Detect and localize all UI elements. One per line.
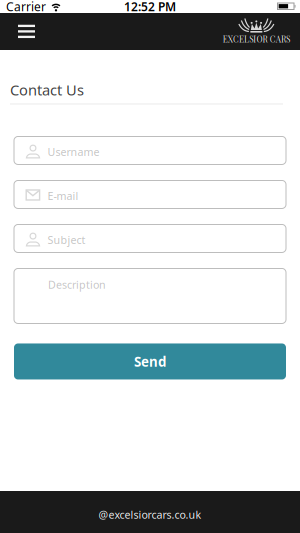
button[interactable]: Send bbox=[14, 339, 286, 379]
staticText: E-mail bbox=[47, 189, 78, 203]
staticText: Send bbox=[134, 353, 166, 370]
button[interactable]: @excelsiorcars.co.uk bbox=[98, 502, 201, 522]
staticText: Username bbox=[47, 145, 99, 159]
button[interactable]: Description bbox=[14, 268, 286, 323]
button[interactable]: E-mail bbox=[14, 180, 286, 208]
staticText: Contact Us bbox=[10, 80, 84, 99]
staticText: Carrier bbox=[6, 0, 46, 14]
button[interactable]: Username bbox=[14, 136, 286, 164]
staticText: Description bbox=[48, 277, 106, 292]
button[interactable]: Menu bbox=[0, 14, 47, 49]
staticText: @excelsiorcars.co.uk bbox=[98, 507, 201, 522]
button[interactable]: Subject bbox=[14, 224, 286, 252]
staticText: Subject bbox=[47, 233, 85, 247]
staticText: 12:52 PM bbox=[124, 0, 176, 14]
staticText: EXCELSIOR CARS bbox=[223, 33, 290, 44]
